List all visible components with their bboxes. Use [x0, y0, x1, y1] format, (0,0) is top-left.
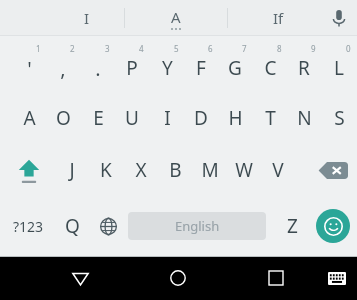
button[interactable]: H — [218, 101, 252, 135]
staticText: 2 — [70, 43, 75, 54]
staticText: I — [164, 105, 171, 131]
button[interactable]: , — [46, 51, 80, 85]
button[interactable]: P — [115, 51, 149, 85]
button[interactable]: Voice input — [320, 0, 357, 36]
button[interactable]: Recent apps — [254, 256, 298, 300]
staticText: 6 — [208, 43, 213, 54]
staticText: A — [171, 7, 181, 27]
staticText: 9 — [311, 43, 316, 54]
staticText: L — [334, 55, 344, 81]
button[interactable]: I — [50, 0, 124, 36]
button[interactable]: R — [287, 51, 321, 85]
button[interactable]: . — [81, 51, 115, 85]
staticText: B — [169, 157, 182, 183]
button[interactable]: S — [322, 101, 356, 135]
staticText: 5 — [174, 43, 179, 54]
button[interactable]: M — [193, 153, 227, 187]
staticText: G — [228, 55, 242, 81]
button[interactable]: F — [184, 51, 218, 85]
button[interactable]: Backspace — [312, 150, 354, 190]
staticText: A — [23, 105, 36, 131]
staticText: O — [56, 105, 71, 131]
staticText: V — [272, 157, 284, 183]
button[interactable]: ' — [12, 51, 46, 85]
button[interactable]: Back — [58, 256, 102, 300]
staticText: C — [264, 55, 277, 81]
button[interactable]: N — [287, 101, 321, 135]
button[interactable]: B — [158, 153, 192, 187]
button[interactable]: English — [128, 212, 266, 240]
staticText: 4 — [139, 43, 144, 54]
staticText: 3 — [105, 43, 110, 54]
staticText: K — [100, 157, 112, 183]
button[interactable]: L — [322, 51, 356, 85]
staticText: ?123 — [13, 217, 44, 236]
button[interactable]: J — [55, 153, 89, 187]
staticText: F — [196, 55, 206, 81]
staticText: English — [175, 217, 220, 235]
staticText: 7 — [242, 43, 247, 54]
staticText: Z — [287, 213, 298, 239]
staticText: 8 — [277, 43, 282, 54]
button[interactable]: ?123 — [4, 205, 52, 247]
staticText: ' — [27, 55, 32, 82]
button[interactable]: Change keyboard language — [90, 206, 126, 246]
button[interactable]: D — [184, 101, 218, 135]
staticText: If — [273, 8, 284, 28]
staticText: Y — [162, 55, 173, 81]
button[interactable]: U — [115, 101, 149, 135]
staticText: Q — [65, 213, 80, 239]
button[interactable]: If — [244, 0, 312, 36]
button[interactable]: Y — [150, 51, 184, 85]
staticText: N — [297, 105, 312, 131]
staticText: P — [126, 55, 138, 81]
button[interactable]: X — [124, 153, 158, 187]
staticText: T — [265, 105, 276, 131]
button[interactable]: K — [89, 153, 123, 187]
button[interactable]: Z — [275, 209, 309, 243]
button[interactable]: Home — [156, 256, 200, 300]
staticText: X — [135, 157, 147, 183]
staticText: D — [194, 105, 208, 131]
button[interactable]: E — [81, 101, 115, 135]
staticText: S — [334, 105, 345, 131]
button[interactable]: Q — [55, 209, 89, 243]
button[interactable]: Emoji — [316, 209, 350, 243]
staticText: H — [228, 105, 243, 131]
button[interactable]: Switch input method — [317, 256, 357, 300]
staticText: R — [298, 55, 310, 81]
button[interactable]: W — [227, 153, 261, 187]
staticText: I — [84, 8, 90, 28]
button[interactable]: T — [253, 101, 287, 135]
staticText: W — [235, 157, 253, 183]
staticText: . — [95, 55, 101, 82]
button[interactable]: Shift — [7, 148, 51, 192]
button[interactable]: A — [12, 101, 46, 135]
staticText: M — [201, 157, 219, 183]
button[interactable]: O — [46, 101, 80, 135]
staticText: 1 — [36, 43, 41, 54]
staticText: E — [93, 105, 104, 131]
button[interactable]: A — [140, 0, 212, 36]
button[interactable]: G — [218, 51, 252, 85]
staticText: , — [60, 55, 66, 82]
staticText: U — [125, 105, 139, 131]
staticText: J — [69, 157, 75, 183]
staticText: 0 — [346, 43, 351, 54]
button[interactable]: C — [253, 51, 287, 85]
button[interactable]: V — [261, 153, 295, 187]
button[interactable]: I — [150, 101, 184, 135]
